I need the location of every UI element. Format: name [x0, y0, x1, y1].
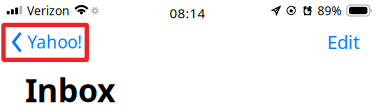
button[interactable]: Edit [319, 23, 367, 61]
staticText: 89% [318, 2, 342, 18]
staticText: Edit [327, 29, 360, 54]
staticText: Yahoo! [27, 30, 82, 53]
staticText: Verizon [27, 3, 69, 19]
button[interactable]: Yahoo! [0, 23, 100, 61]
staticText: Inbox [25, 68, 115, 111]
staticText: 08:14 [169, 4, 205, 22]
